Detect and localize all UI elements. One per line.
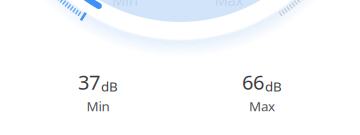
button[interactable]: 37 bbox=[16, 69, 180, 115]
staticText: Max bbox=[249, 97, 275, 115]
staticText: 66 bbox=[242, 69, 264, 95]
staticText: dB bbox=[265, 78, 282, 95]
staticText: Min bbox=[112, 0, 138, 10]
staticText: Max bbox=[214, 0, 243, 10]
staticText: 37 bbox=[78, 69, 100, 95]
button[interactable]: 66 bbox=[180, 69, 344, 115]
staticText: Min bbox=[86, 97, 109, 115]
staticText: dB bbox=[101, 78, 118, 95]
